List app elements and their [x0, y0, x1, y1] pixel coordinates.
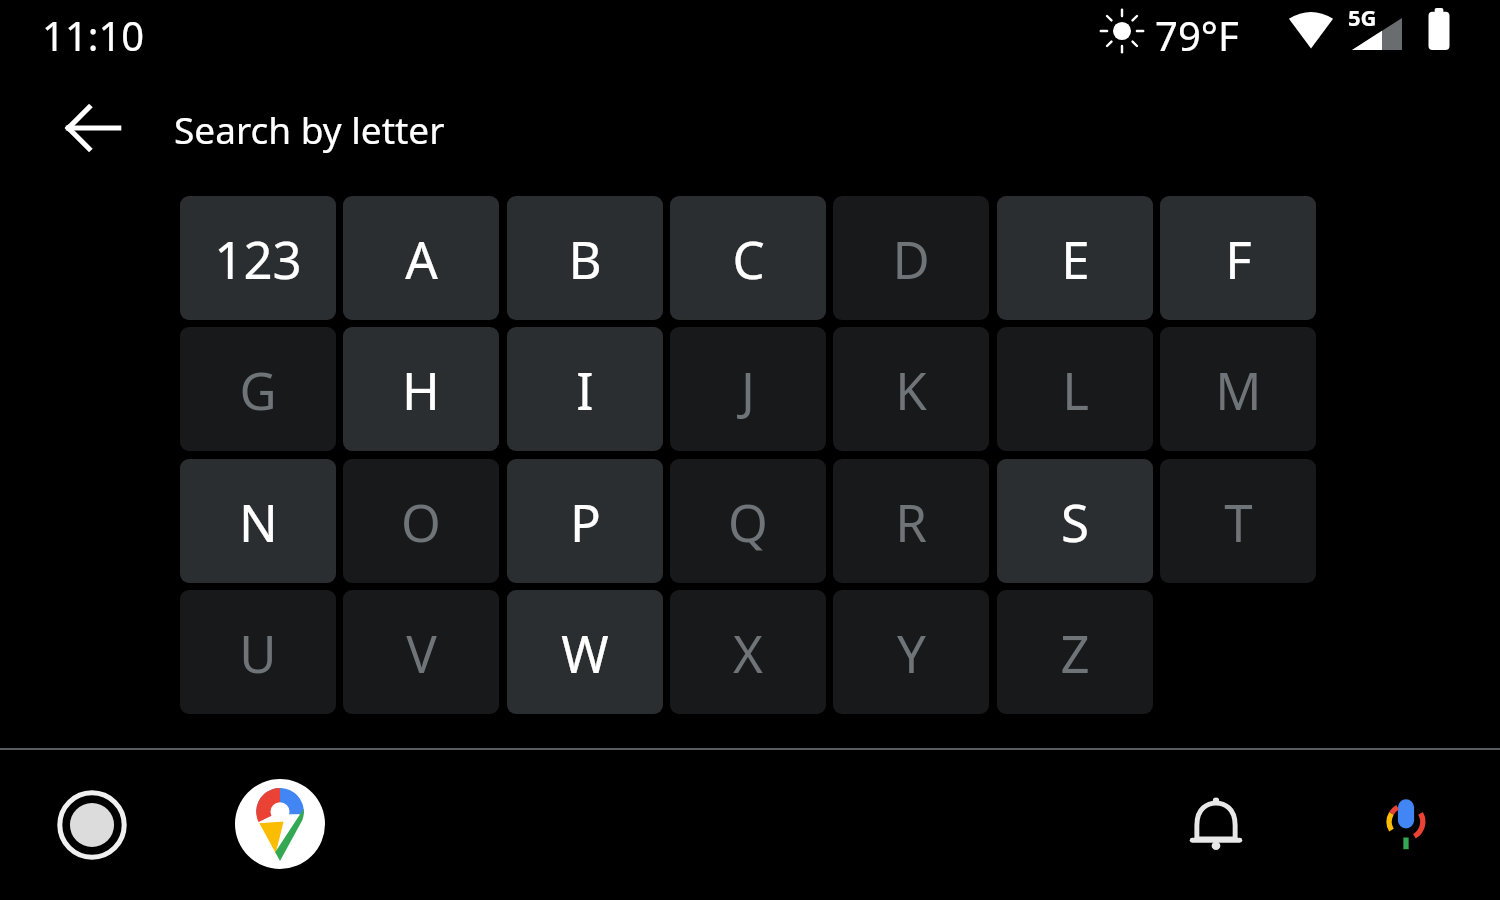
- staticText: I: [576, 355, 594, 424]
- button[interactable]: R: [833, 459, 989, 583]
- staticText: Search by letter: [174, 104, 445, 154]
- button[interactable]: U: [180, 590, 336, 714]
- button[interactable]: B: [507, 196, 663, 320]
- staticText: F: [1225, 224, 1252, 293]
- staticText: J: [741, 355, 755, 424]
- staticText: E: [1061, 224, 1090, 293]
- button[interactable]: X: [670, 590, 826, 714]
- staticText: U: [239, 618, 277, 687]
- button[interactable]: E: [997, 196, 1153, 320]
- staticText: N: [239, 487, 278, 556]
- button[interactable]: C: [670, 196, 826, 320]
- staticText: 123: [214, 224, 302, 293]
- staticText: G: [239, 355, 277, 424]
- button[interactable]: Y: [833, 590, 989, 714]
- button[interactable]: S: [997, 459, 1153, 583]
- button[interactable]: M: [1160, 327, 1316, 451]
- staticText: Y: [897, 618, 926, 687]
- button[interactable]: J: [670, 327, 826, 451]
- button[interactable]: Back: [52, 87, 134, 169]
- button[interactable]: D: [833, 196, 989, 320]
- staticText: S: [1061, 487, 1089, 556]
- staticText: A: [405, 224, 438, 293]
- button[interactable]: Q: [670, 459, 826, 583]
- button[interactable]: 123: [180, 196, 336, 320]
- staticText: D: [892, 224, 930, 293]
- staticText: 79°F: [1155, 8, 1239, 62]
- staticText: W: [561, 618, 609, 687]
- button[interactable]: V: [343, 590, 499, 714]
- button[interactable]: P: [507, 459, 663, 583]
- button[interactable]: Voice search: [1358, 776, 1454, 872]
- button[interactable]: K: [833, 327, 989, 451]
- button[interactable]: H: [343, 327, 499, 451]
- button[interactable]: N: [180, 459, 336, 583]
- button[interactable]: T: [1160, 459, 1316, 583]
- staticText: B: [568, 224, 602, 293]
- staticText: Q: [728, 487, 768, 556]
- button[interactable]: W: [507, 590, 663, 714]
- staticText: P: [570, 487, 601, 556]
- staticText: T: [1224, 487, 1253, 556]
- button[interactable]: Google Maps: [230, 774, 330, 874]
- button[interactable]: Home: [42, 775, 142, 875]
- button[interactable]: A: [343, 196, 499, 320]
- button[interactable]: Notifications: [1168, 776, 1264, 872]
- staticText: V: [406, 618, 437, 687]
- staticText: L: [1062, 355, 1089, 424]
- button[interactable]: O: [343, 459, 499, 583]
- staticText: Z: [1060, 618, 1090, 687]
- staticText: M: [1215, 355, 1262, 424]
- staticText: 5G: [1348, 2, 1377, 32]
- staticText: C: [732, 224, 765, 293]
- button[interactable]: Z: [997, 590, 1153, 714]
- button[interactable]: I: [507, 327, 663, 451]
- staticText: K: [895, 355, 927, 424]
- button[interactable]: G: [180, 327, 336, 451]
- button[interactable]: F: [1160, 196, 1316, 320]
- staticText: R: [895, 487, 927, 556]
- staticText: O: [401, 487, 441, 556]
- button[interactable]: L: [997, 327, 1153, 451]
- staticText: H: [402, 355, 440, 424]
- staticText: 11:10: [42, 8, 145, 62]
- staticText: X: [733, 618, 763, 687]
